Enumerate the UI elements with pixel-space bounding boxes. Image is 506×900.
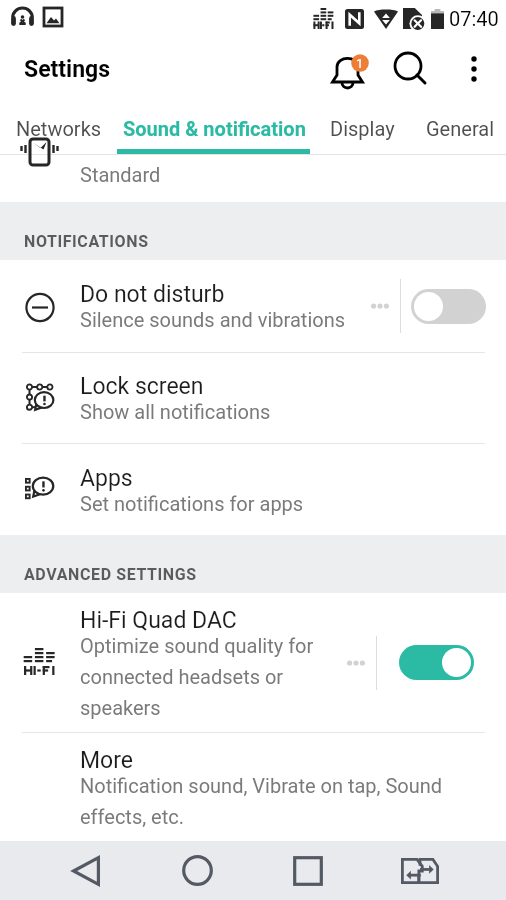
staticText: Show all notifications (80, 400, 271, 423)
button[interactable]: Search (380, 38, 442, 100)
button[interactable]: Dual window (364, 841, 476, 900)
button[interactable]: Home (141, 841, 253, 900)
staticText: Notification sound, Vibrate on tap, Soun… (80, 774, 448, 828)
button[interactable]: Lock screen (0, 353, 506, 443)
button[interactable]: Networks (16, 117, 102, 140)
button[interactable]: Back (30, 841, 142, 900)
staticText: More (80, 747, 133, 774)
staticText: Networks (16, 117, 102, 140)
staticText: Standard (80, 163, 161, 186)
staticText: Settings (24, 56, 111, 83)
staticText: Do not disturb (80, 281, 225, 308)
staticText: 07:40 (449, 7, 499, 30)
staticText: Optimize sound quality for connected hea… (80, 634, 330, 719)
button[interactable]: More (0, 733, 506, 841)
staticText: Sound & notification (123, 117, 306, 140)
button[interactable]: Recent apps (252, 841, 364, 900)
staticText: Silence sounds and vibrations (80, 308, 346, 331)
button[interactable]: Do not disturb (0, 260, 506, 352)
button[interactable]: More options (442, 38, 506, 100)
staticText: NOTIFICATIONS (24, 232, 149, 251)
button[interactable]: Notifications (318, 38, 380, 100)
staticText: Set notifications for apps (80, 492, 304, 515)
staticText: Hi-Fi Quad DAC (80, 607, 237, 634)
staticText: Lock screen (80, 373, 204, 400)
button[interactable]: Hi-Fi Quad DAC (0, 593, 506, 732)
button[interactable]: Do not disturb (401, 260, 495, 352)
staticText: Apps (80, 465, 133, 492)
staticText: 1 (356, 56, 364, 71)
staticText: Display (330, 117, 395, 140)
button[interactable]: Hi-Fi Quad DAC (377, 593, 495, 732)
staticText: General (426, 117, 495, 140)
button[interactable]: Sound & notification (123, 117, 306, 140)
button[interactable]: Display (330, 117, 395, 140)
button[interactable]: General (426, 117, 495, 140)
button[interactable]: Apps (0, 444, 506, 535)
staticText: ADVANCED SETTINGS (24, 565, 197, 584)
